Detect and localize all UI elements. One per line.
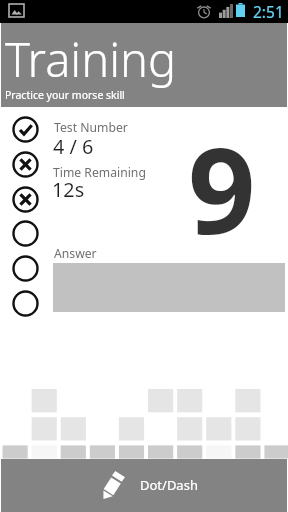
- staticText: 9: [188, 108, 256, 269]
- button[interactable]: Correct: [12, 116, 39, 143]
- staticText: Time Remaining: [53, 164, 146, 181]
- button[interactable]: Dot/Dash input: [1, 459, 287, 512]
- staticText: 2:51: [253, 1, 284, 22]
- button[interactable]: Pending: [12, 290, 39, 317]
- staticText: Dot/Dash: [140, 476, 198, 494]
- staticText: Training: [5, 27, 177, 91]
- staticText: 12s: [52, 176, 85, 203]
- other: Dot/Dash input: [103, 471, 125, 499]
- staticText: Answer: [54, 245, 97, 262]
- staticText: 4 / 6: [53, 133, 94, 160]
- staticText: Test Number: [54, 119, 128, 136]
- button[interactable]: Pending: [12, 255, 39, 282]
- button[interactable]: Pending: [12, 220, 39, 247]
- button[interactable]: Wrong: [12, 151, 39, 178]
- button[interactable]: Wrong: [12, 186, 39, 213]
- staticText: Practice your morse skill: [5, 88, 125, 102]
